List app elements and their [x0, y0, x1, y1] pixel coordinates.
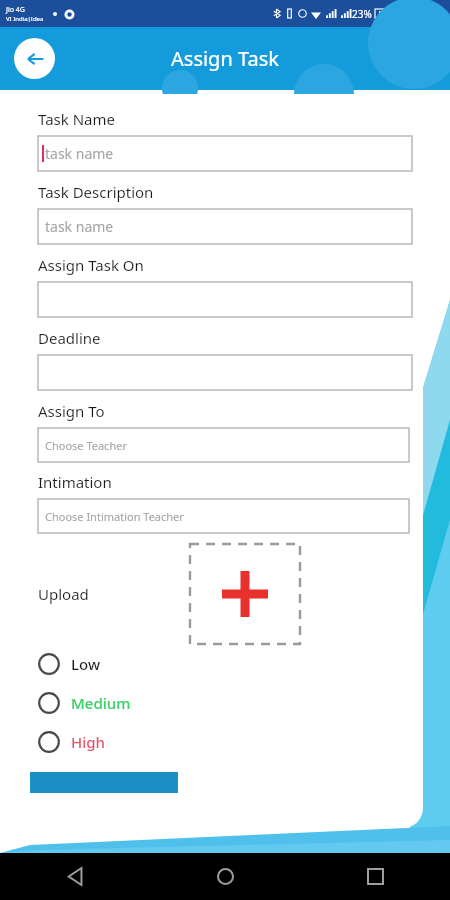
button[interactable] — [38, 282, 412, 317]
button[interactable]: Upload file — [190, 544, 300, 644]
staticText: Intimation — [38, 472, 112, 492]
staticText: Task Description — [38, 182, 154, 202]
staticText: task name — [45, 217, 114, 236]
button[interactable]: Home — [150, 853, 300, 900]
staticText: 23% — [352, 7, 372, 21]
button[interactable]: Choose Teacher — [38, 428, 409, 462]
staticText: Jio 4G — [6, 5, 25, 15]
button[interactable]: task name — [38, 209, 412, 244]
button[interactable]: Back — [0, 853, 150, 900]
staticText: Assign Task On — [38, 255, 144, 275]
staticText: Assign To — [38, 401, 105, 421]
staticText: High — [71, 732, 105, 752]
staticText: Choose Teacher — [45, 438, 127, 453]
staticText: task name — [45, 144, 114, 163]
button[interactable]: Choose Intimation Teacher — [38, 499, 409, 533]
staticText: VI India|Idea — [6, 15, 44, 23]
staticText: Task Name — [38, 109, 115, 129]
staticText: Medium — [71, 693, 131, 713]
staticText: 12:09 pm — [395, 6, 444, 21]
button[interactable]: Back — [14, 38, 55, 79]
staticText: Deadline — [38, 328, 101, 348]
button[interactable]: Recents — [300, 853, 450, 900]
staticText: Low — [71, 654, 100, 674]
button[interactable]: Medium — [38, 692, 188, 714]
button[interactable]: task name — [38, 136, 412, 171]
button[interactable]: Low — [38, 653, 188, 675]
button[interactable]: High — [38, 731, 188, 753]
staticText: Choose Intimation Teacher — [45, 509, 184, 524]
staticText: Assign Task — [171, 45, 279, 72]
staticText: Upload — [38, 584, 89, 604]
button[interactable] — [38, 355, 412, 390]
